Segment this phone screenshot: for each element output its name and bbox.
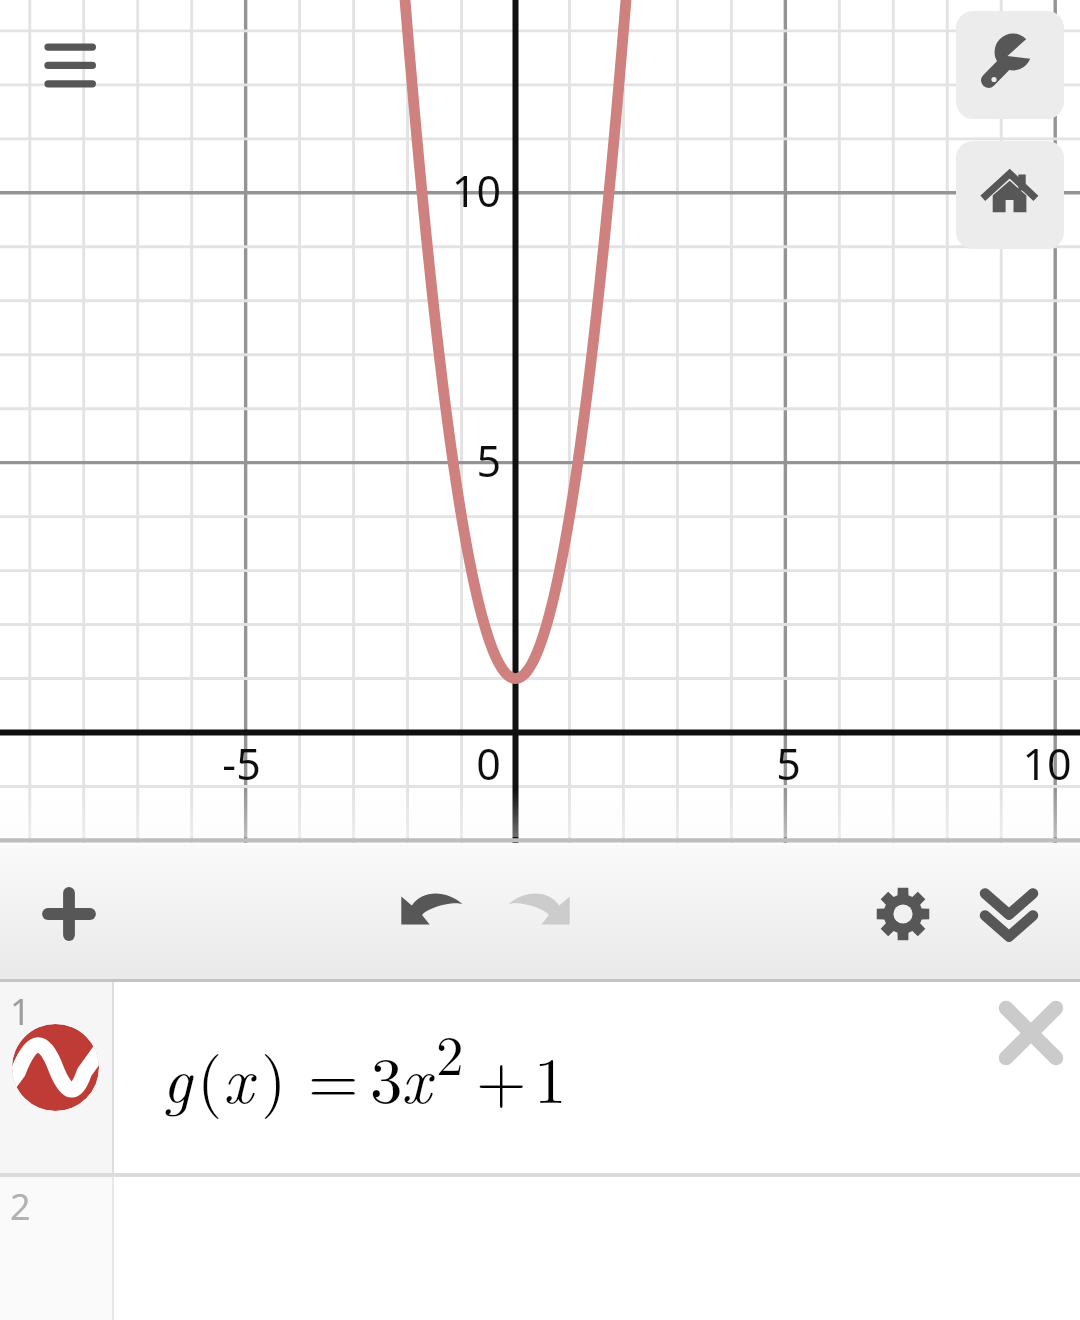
staticText: x bbox=[401, 1030, 432, 1122]
staticText: g bbox=[162, 1030, 192, 1122]
staticText: = bbox=[308, 1030, 359, 1122]
button[interactable]: Remove expression bbox=[981, 983, 1080, 1083]
button[interactable]: Collapse bbox=[959, 864, 1059, 964]
button[interactable]: Graph settings bbox=[956, 11, 1064, 119]
button[interactable]: 1 bbox=[0, 982, 1080, 1173]
staticText: x bbox=[223, 1030, 254, 1122]
staticText: 10 bbox=[451, 161, 501, 220]
staticText: 5 bbox=[776, 734, 801, 793]
button[interactable]: Menu bbox=[30, 22, 116, 96]
button[interactable]: Redo bbox=[489, 864, 589, 964]
staticText: 0 bbox=[476, 734, 501, 793]
staticText: ( bbox=[197, 1030, 223, 1122]
button[interactable]: 2 bbox=[0, 1177, 1080, 1320]
button[interactable]: Settings bbox=[853, 864, 953, 964]
staticText: 5 bbox=[476, 431, 501, 490]
staticText: 2 bbox=[436, 1013, 464, 1091]
staticText: 2 bbox=[10, 1182, 31, 1231]
staticText: + bbox=[476, 1030, 527, 1122]
staticText: 1 bbox=[10, 987, 31, 1036]
staticText: 10 bbox=[1022, 734, 1072, 793]
staticText: -5 bbox=[222, 734, 261, 793]
staticText: 3 bbox=[370, 1030, 403, 1122]
staticText: 1 bbox=[534, 1030, 567, 1122]
button[interactable]: Undo bbox=[382, 864, 482, 964]
button[interactable]: Home bbox=[956, 141, 1064, 249]
button[interactable]: Add expression bbox=[19, 864, 119, 964]
staticText: ) bbox=[261, 1030, 287, 1122]
